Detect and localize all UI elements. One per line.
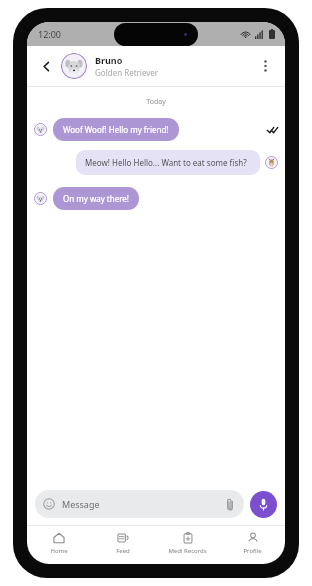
- button[interactable]: Attach file: [222, 496, 238, 512]
- button[interactable]: Profile photo: [61, 53, 87, 79]
- staticText: 12:00: [38, 28, 62, 40]
- staticText: Woof Woof! Hello my friend!: [63, 124, 169, 135]
- button[interactable]: Home: [27, 526, 91, 560]
- button[interactable]: On my way there!: [34, 187, 278, 210]
- staticText: Feed: [116, 547, 130, 555]
- button[interactable]: Back: [36, 56, 56, 76]
- button[interactable]: Message: [35, 490, 244, 518]
- button[interactable]: Record voice message: [250, 491, 277, 518]
- staticText: Message: [62, 498, 100, 510]
- staticText: Today: [27, 97, 285, 107]
- button[interactable]: Medi Records: [155, 526, 220, 560]
- staticText: Profile: [243, 547, 262, 555]
- button[interactable]: Feed: [91, 526, 155, 560]
- button[interactable]: Profile: [220, 526, 285, 560]
- staticText: Golden Retriever: [95, 67, 159, 78]
- staticText: Bruno: [95, 54, 123, 66]
- staticText: Home: [50, 547, 68, 555]
- button[interactable]: Woof Woof! Hello my friend!: [34, 118, 278, 141]
- button[interactable]: More options: [254, 55, 276, 77]
- staticText: On my way there!: [63, 193, 129, 204]
- button[interactable]: Meow! Hello Hello... Want to eat some fi…: [34, 150, 278, 175]
- staticText: Medi Records: [168, 547, 207, 555]
- staticText: Meow! Hello Hello... Want to eat some fi…: [85, 157, 247, 168]
